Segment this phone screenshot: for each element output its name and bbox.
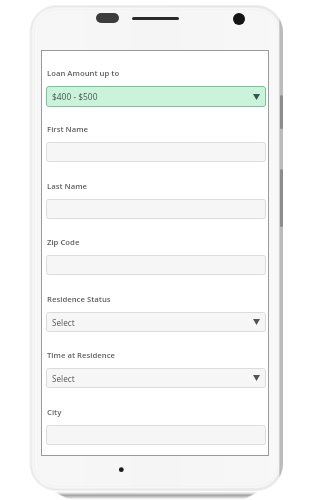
button[interactable]: Zip Code <box>46 255 266 275</box>
staticText: Zip Code <box>47 237 80 247</box>
other: Open dropdown <box>253 375 266 381</box>
button[interactable]: Last Name <box>46 199 266 219</box>
staticText: Select <box>52 373 75 384</box>
other: Power button <box>280 95 283 129</box>
button[interactable]: Select <box>46 312 266 332</box>
staticText: $400 - $500 <box>52 91 98 102</box>
staticText: Time at Residence <box>47 350 116 360</box>
staticText: First Name <box>47 124 89 134</box>
other: Open dropdown <box>253 94 266 100</box>
staticText: City <box>47 407 62 417</box>
staticText: Residence Status <box>47 294 111 304</box>
button[interactable]: First Name <box>46 142 266 162</box>
staticText: Loan Amount up to <box>47 68 120 78</box>
other: Open dropdown <box>253 319 266 325</box>
button[interactable]: Select <box>46 368 266 388</box>
other: Volume button <box>280 169 283 227</box>
staticText: Last Name <box>47 181 88 191</box>
button[interactable]: City <box>46 425 266 445</box>
staticText: Select <box>52 317 75 328</box>
button[interactable]: $400 - $500 <box>46 86 266 107</box>
